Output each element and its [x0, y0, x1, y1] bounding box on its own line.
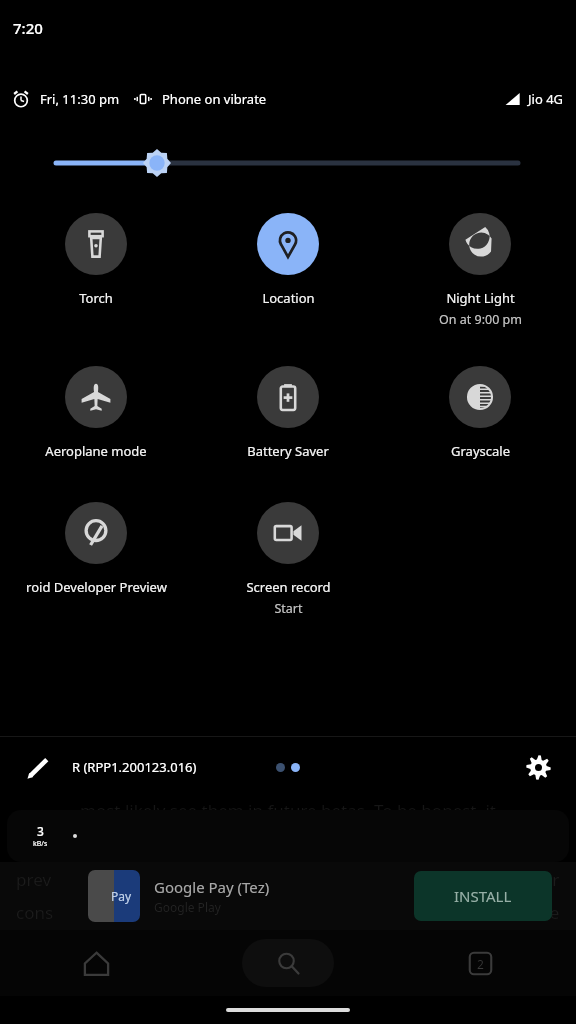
- button[interactable]: Edit tiles: [20, 749, 56, 785]
- staticText: prev: [16, 868, 52, 891]
- button[interactable]: Tabs, 2 open: [384, 930, 576, 996]
- staticText: Night Light: [446, 289, 515, 307]
- staticText: Phone on vibrate: [162, 90, 267, 108]
- staticText: Torch: [79, 289, 113, 307]
- staticText: for: [536, 868, 560, 891]
- button[interactable]: Torch: [0, 213, 192, 307]
- staticText: R (RPP1.200123.016): [72, 758, 197, 776]
- staticText: Pay: [111, 888, 132, 904]
- staticText: Screen record: [246, 578, 331, 596]
- staticText: like: [532, 901, 560, 924]
- button[interactable]: Aeroplane mode: [0, 366, 192, 460]
- staticText: Aeroplane mode: [45, 442, 147, 460]
- staticText: 7:20: [13, 18, 43, 38]
- button[interactable]: Settings: [520, 749, 556, 785]
- button[interactable]: INSTALL: [414, 871, 552, 921]
- staticText: Location: [262, 289, 315, 307]
- staticText: roid Developer Preview: [26, 578, 167, 596]
- staticText: INSTALL: [454, 886, 512, 906]
- button[interactable]: Grayscale: [384, 366, 576, 460]
- staticText: Google Play: [154, 899, 221, 915]
- staticText: Grayscale: [451, 442, 510, 460]
- staticText: 2: [477, 956, 484, 972]
- staticText: cons: [16, 901, 54, 924]
- staticText: On at 9:00 pm: [439, 311, 522, 328]
- staticText: most likely see them in future betas. To…: [80, 799, 497, 822]
- staticText: 3: [37, 823, 44, 839]
- button[interactable]: Battery Saver: [192, 366, 384, 460]
- staticText: kB/s: [33, 839, 48, 849]
- staticText: Start: [274, 600, 303, 617]
- button[interactable]: Home: [0, 930, 192, 996]
- staticText: Jio 4G: [528, 90, 564, 108]
- button[interactable]: Screen record: [192, 502, 384, 617]
- button[interactable]: Search: [192, 930, 384, 996]
- button[interactable]: Location: [192, 213, 384, 307]
- button[interactable]: roid Developer Preview: [0, 502, 192, 596]
- staticText: Google Pay (Tez): [154, 877, 270, 897]
- button[interactable]: Night Light: [384, 213, 576, 328]
- staticText: Fri, 11:30 pm: [40, 90, 120, 108]
- staticText: Battery Saver: [247, 442, 329, 460]
